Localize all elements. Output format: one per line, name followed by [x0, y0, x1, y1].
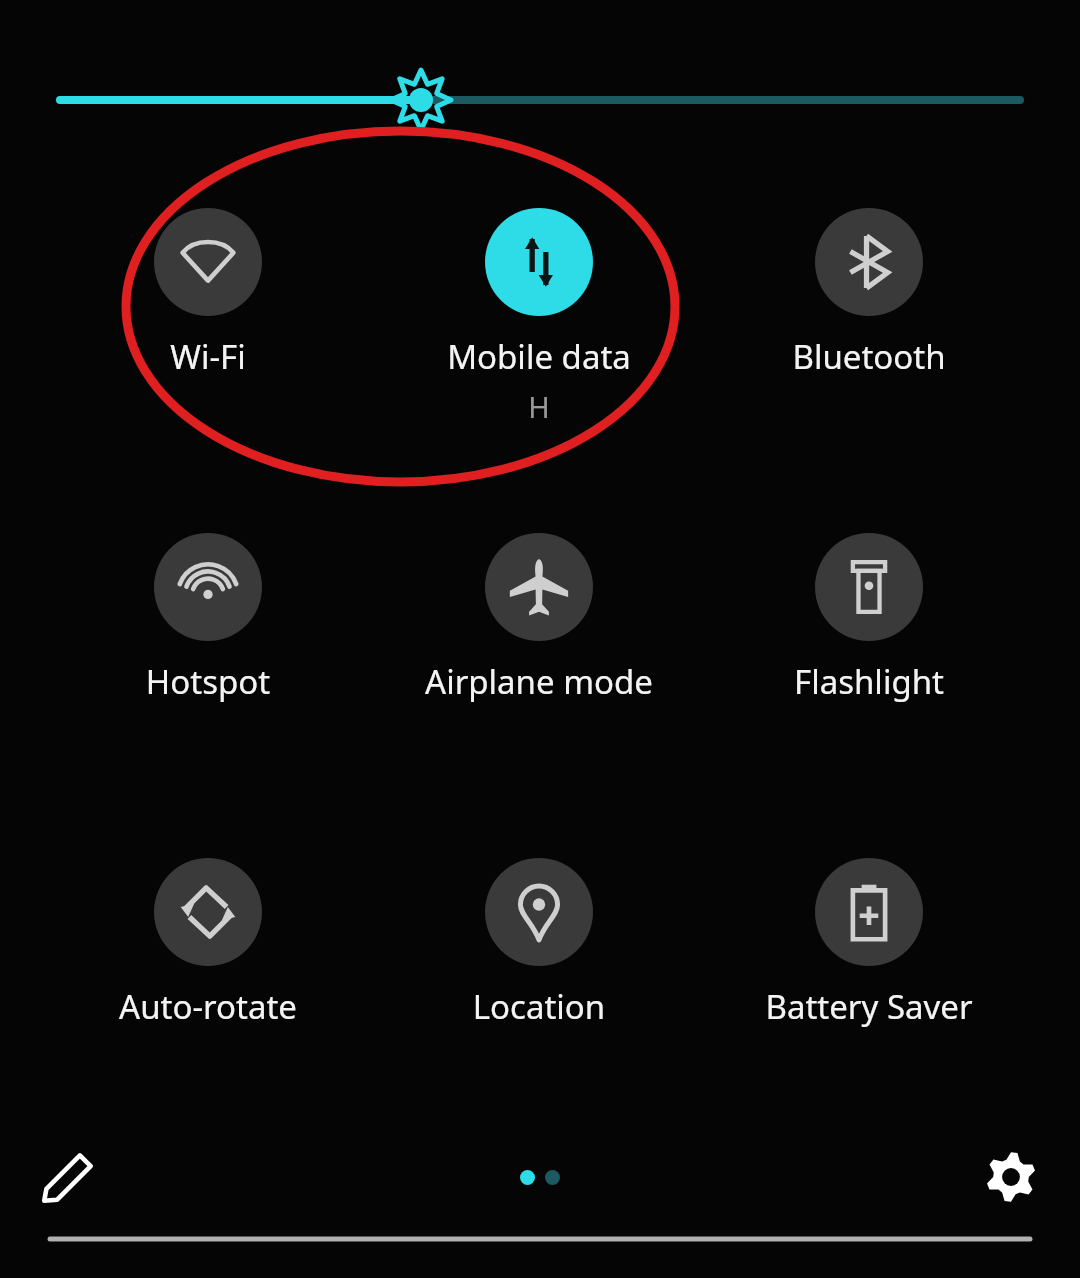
button[interactable]: Location	[374, 840, 704, 1029]
staticText: Flashlight	[704, 659, 1034, 704]
staticText: Airplane mode	[374, 659, 704, 704]
button[interactable]: Mobile data	[374, 190, 704, 426]
staticText: H	[374, 387, 704, 426]
button[interactable]: Wi-Fi	[43, 190, 373, 379]
button[interactable]: Bluetooth	[704, 190, 1034, 379]
button[interactable]: Edit tiles	[34, 1143, 102, 1211]
button[interactable]: Brightness	[60, 70, 1020, 130]
button[interactable]: Airplane mode	[374, 515, 704, 704]
staticText: Location	[374, 984, 704, 1029]
staticText: Mobile data	[374, 334, 704, 379]
staticText: Bluetooth	[704, 334, 1034, 379]
button[interactable]: Auto-rotate	[43, 840, 373, 1029]
staticText: Auto-rotate	[43, 984, 373, 1029]
staticText: Wi-Fi	[43, 334, 373, 379]
button[interactable]: Settings	[977, 1143, 1045, 1211]
staticText: Hotspot	[43, 659, 373, 704]
staticText: Battery Saver	[704, 984, 1034, 1029]
button[interactable]: Battery Saver	[704, 840, 1034, 1029]
button[interactable]: Hotspot	[43, 515, 373, 704]
button[interactable]: Flashlight	[704, 515, 1034, 704]
